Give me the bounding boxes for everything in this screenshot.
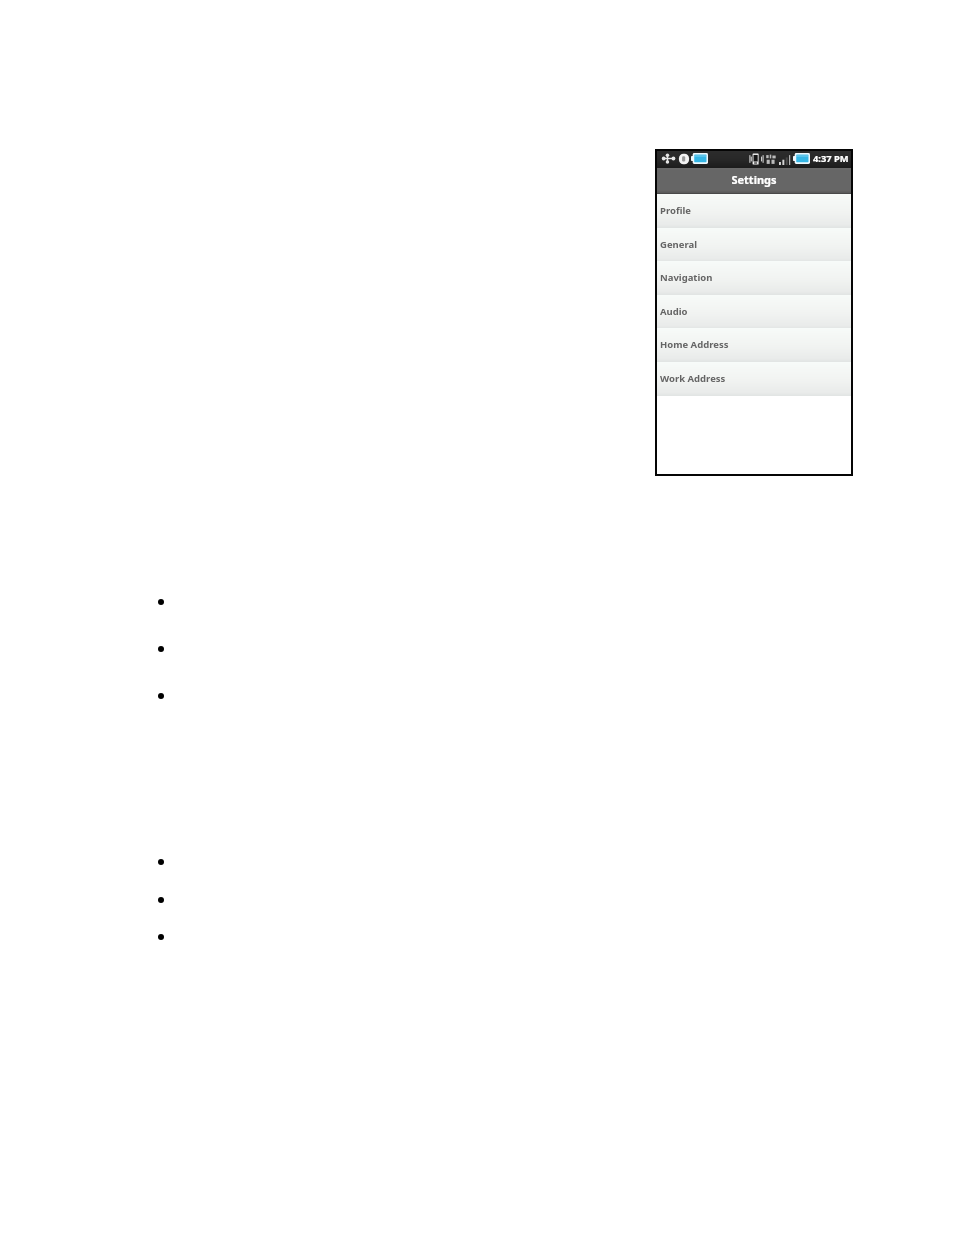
other: USB connected <box>662 153 675 164</box>
button[interactable]: Profile <box>657 194 851 228</box>
button[interactable]: Navigation <box>657 261 851 295</box>
staticText: Work Address <box>660 372 726 385</box>
other: Battery <box>793 153 810 164</box>
staticText: Settings <box>731 172 777 187</box>
staticText: General <box>660 238 697 251</box>
staticText: Profile <box>660 204 691 217</box>
staticText: Home Address <box>660 338 729 351</box>
staticText: 4:37 PM <box>813 152 849 165</box>
other: Mobile data <box>766 154 777 165</box>
staticText: Audio <box>660 305 688 318</box>
other: Battery charging <box>691 153 708 164</box>
other: Signal strength <box>779 155 792 165</box>
button[interactable]: Audio <box>657 295 851 329</box>
staticText: Navigation <box>660 271 713 284</box>
other: Vibrate mode <box>749 153 764 165</box>
button[interactable]: Home Address <box>657 328 851 362</box>
button[interactable]: General <box>657 228 851 262</box>
other: Storage <box>678 153 690 165</box>
button[interactable]: Work Address <box>657 362 851 396</box>
